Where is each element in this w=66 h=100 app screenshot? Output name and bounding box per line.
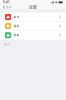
staticText: 账号: [4, 43, 10, 46]
staticText: 账号: [14, 15, 20, 19]
button[interactable]: 通用: [0, 22, 66, 31]
button[interactable]: 返回: [0, 5, 14, 10]
staticText: 隐私: [14, 34, 20, 37]
button[interactable]: 账号: [0, 13, 66, 22]
staticText: 设置: [29, 5, 37, 10]
button[interactable]: 隐私: [0, 31, 66, 40]
staticText: 通用: [14, 24, 20, 28]
staticText: 返回: [6, 6, 12, 9]
staticText: 9:41: [3, 0, 10, 4]
